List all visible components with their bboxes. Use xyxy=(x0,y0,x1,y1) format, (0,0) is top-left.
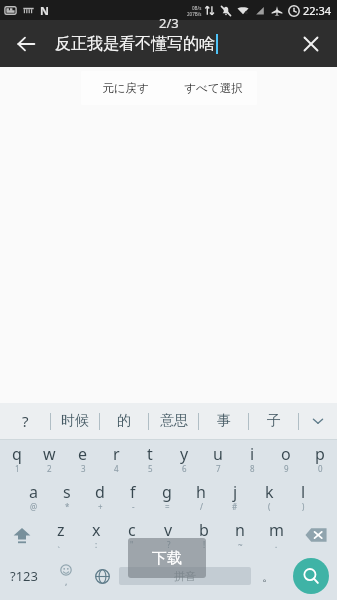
staticText: o xyxy=(281,443,291,465)
button[interactable]: g xyxy=(150,478,184,516)
staticText: n xyxy=(235,519,245,541)
button[interactable]: すべて選択 xyxy=(169,71,257,105)
button[interactable]: 。 xyxy=(251,554,285,598)
button[interactable]: l xyxy=(286,478,320,516)
button[interactable]: Search xyxy=(293,558,329,594)
button[interactable]: p xyxy=(303,440,337,478)
button[interactable]: Change language xyxy=(85,554,119,598)
staticText: 的 xyxy=(117,412,131,430)
button[interactable]: v xyxy=(150,516,186,554)
staticText: h xyxy=(196,481,206,503)
button[interactable]: Shift xyxy=(0,516,43,554)
staticText: s xyxy=(63,481,71,503)
staticText: p xyxy=(315,443,325,465)
staticText: 7 xyxy=(216,463,221,474)
button[interactable]: Back xyxy=(6,24,46,64)
button[interactable]: t xyxy=(133,440,167,478)
button[interactable]: 的 xyxy=(100,403,148,439)
staticText: * xyxy=(65,501,70,512)
staticText: 事 xyxy=(217,412,231,430)
button[interactable]: a xyxy=(17,478,50,516)
button[interactable]: j xyxy=(218,478,252,516)
staticText: N xyxy=(40,3,49,18)
staticText: 子 xyxy=(267,412,281,430)
button[interactable]: w xyxy=(33,440,66,478)
button[interactable]: h xyxy=(184,478,218,516)
button[interactable]: i xyxy=(235,440,269,478)
button[interactable]: z xyxy=(43,516,78,554)
staticText: 反正我是看不懂写的啥 xyxy=(55,34,215,54)
staticText: 下载 xyxy=(152,549,182,568)
button[interactable]: d xyxy=(83,478,116,516)
staticText: 1 xyxy=(15,463,20,474)
staticText: w xyxy=(43,443,56,465)
staticText: . xyxy=(275,539,278,550)
staticText: 拼音 xyxy=(174,569,196,583)
staticText: 2 xyxy=(47,463,52,474)
staticText: すべて選択 xyxy=(184,81,243,95)
button[interactable]: q xyxy=(0,440,33,478)
button[interactable]: o xyxy=(269,440,303,478)
staticText: / xyxy=(200,501,203,512)
button[interactable]: Expand suggestions xyxy=(299,403,337,439)
staticText: j xyxy=(233,481,238,503)
button[interactable]: k xyxy=(252,478,286,516)
staticText: z xyxy=(57,519,65,541)
button[interactable]: y xyxy=(167,440,201,478)
button[interactable]: Clear xyxy=(291,24,331,64)
button[interactable]: f xyxy=(116,478,150,516)
staticText: f xyxy=(130,481,136,503)
staticText: u xyxy=(213,443,223,465)
staticText: ? xyxy=(22,411,29,431)
staticText: q xyxy=(12,443,22,465)
staticText: 6 xyxy=(182,463,187,474)
button[interactable]: 意思 xyxy=(149,403,198,439)
button[interactable]: b xyxy=(186,516,222,554)
staticText: 0 xyxy=(318,463,323,474)
button[interactable]: Backspace xyxy=(294,516,337,554)
staticText: ? xyxy=(167,539,171,550)
button[interactable]: ?123 xyxy=(0,554,47,598)
button[interactable]: x xyxy=(78,516,114,554)
staticText: ) xyxy=(302,501,305,512)
button[interactable]: m xyxy=(258,516,294,554)
button[interactable]: 元に戻す xyxy=(81,71,169,105)
staticText: y xyxy=(180,443,189,465)
button[interactable]: 子 xyxy=(249,403,298,439)
staticText: 、 xyxy=(57,539,65,549)
staticText: d xyxy=(95,481,105,503)
staticText: , xyxy=(65,575,68,587)
staticText: 时候 xyxy=(61,412,89,430)
staticText: e xyxy=(78,443,88,465)
button[interactable]: Emoji xyxy=(47,554,85,598)
staticText: m xyxy=(269,519,284,541)
button[interactable]: n xyxy=(222,516,258,554)
staticText: g xyxy=(162,481,172,503)
staticText: = xyxy=(165,501,170,512)
staticText: 意思 xyxy=(160,412,188,430)
button[interactable]: c xyxy=(114,516,150,554)
staticText: 4 xyxy=(114,463,119,474)
button[interactable]: 事 xyxy=(199,403,248,439)
staticText: 207B/s xyxy=(187,11,202,17)
staticText: 2/3 xyxy=(159,14,179,32)
staticText: ~ xyxy=(238,539,243,550)
staticText: l xyxy=(301,481,306,503)
staticText: @ xyxy=(30,501,38,512)
staticText: " xyxy=(130,539,134,550)
button[interactable]: r xyxy=(99,440,133,478)
button[interactable]: 时候 xyxy=(51,403,99,439)
staticText: 。 xyxy=(262,569,274,584)
button[interactable]: s xyxy=(50,478,83,516)
staticText: : xyxy=(95,539,98,550)
staticText: t xyxy=(147,443,153,465)
button[interactable]: e xyxy=(66,440,99,478)
staticText: 5 xyxy=(148,463,153,474)
button[interactable]: 拼音 xyxy=(119,567,251,585)
button[interactable]: u xyxy=(201,440,235,478)
staticText: 3 xyxy=(81,463,86,474)
staticText: a xyxy=(29,481,38,503)
button[interactable]: ? xyxy=(0,403,50,439)
staticText: - xyxy=(132,501,135,512)
staticText: ! xyxy=(203,539,206,550)
